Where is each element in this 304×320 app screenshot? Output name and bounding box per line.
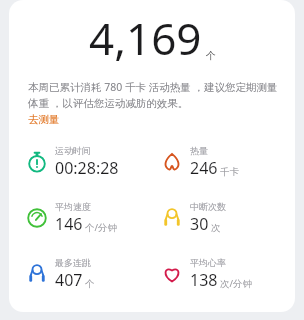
staticText: 次 <box>211 222 221 234</box>
other: 运动时间 <box>26 151 48 173</box>
staticText: 138 <box>190 269 218 291</box>
other: 平均速度 <box>26 207 48 229</box>
staticText: 00:28:28 <box>55 157 119 179</box>
button[interactable]: 去测量 <box>28 113 60 126</box>
staticText: 去测量 <box>28 113 60 126</box>
staticText: 个 <box>85 278 95 290</box>
staticText: 平均速度 <box>55 201 91 212</box>
staticText: 千卡 <box>220 166 239 178</box>
staticText: 运动时间 <box>55 145 91 156</box>
staticText: 30 <box>190 213 209 235</box>
other: 平均心率 <box>161 263 183 285</box>
staticText: 次/分钟 <box>220 277 253 290</box>
other: 热量 <box>161 151 183 173</box>
staticText: 个/分钟 <box>85 221 118 234</box>
staticText: 4,169 <box>89 8 202 68</box>
other: 最多连跳 <box>26 263 48 285</box>
staticText: 146 <box>55 213 83 235</box>
button[interactable]: 热量 <box>161 145 243 179</box>
staticText: 246 <box>190 157 218 179</box>
staticText: 中断次数 <box>190 201 226 212</box>
staticText: 热量 <box>190 145 208 156</box>
staticText: 最多连跳 <box>55 257 91 268</box>
button[interactable]: 运动时间 <box>26 145 123 179</box>
button[interactable]: 最多连跳 <box>26 257 99 291</box>
staticText: 平均心率 <box>190 257 226 268</box>
button[interactable]: 平均速度 <box>26 201 122 235</box>
other: 中断次数 <box>161 207 183 229</box>
button[interactable]: 平均心率 <box>161 257 257 291</box>
staticText: 个 <box>206 49 216 62</box>
staticText: 本周已累计消耗 780 千卡 活动热量 ，建议您定期测量体重 ，以评估您运动减肪… <box>28 80 281 110</box>
staticText: 407 <box>55 269 83 291</box>
button[interactable]: 中断次数 <box>161 201 230 235</box>
